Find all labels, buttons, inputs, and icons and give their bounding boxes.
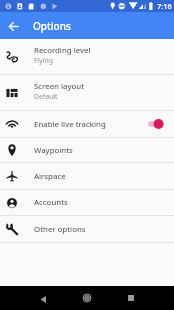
staticText: 7:16 xyxy=(157,1,172,11)
staticText: Other options xyxy=(34,224,86,235)
button[interactable]: Back xyxy=(2,14,26,38)
button[interactable]: Recent apps xyxy=(121,288,141,308)
staticText: Default xyxy=(34,92,58,101)
staticText: Options xyxy=(33,19,71,33)
button[interactable]: Other options xyxy=(0,216,174,242)
button[interactable]: Screen layout xyxy=(0,75,174,110)
button[interactable]: Airspace xyxy=(0,163,174,189)
button[interactable]: Enable live tracking xyxy=(0,111,174,137)
button[interactable]: Waypoints xyxy=(0,138,174,162)
button[interactable]: Recording level xyxy=(0,39,174,74)
button[interactable]: Back xyxy=(33,288,53,308)
button[interactable]: Accounts xyxy=(0,190,174,215)
staticText: Enable live tracking xyxy=(34,119,106,130)
staticText: Recording level xyxy=(34,45,91,56)
staticText: Screen layout xyxy=(34,81,85,92)
staticText: Waypoints xyxy=(34,145,73,156)
staticText: Accounts xyxy=(34,197,68,208)
staticText: Airspace xyxy=(34,171,66,182)
staticText: Flying xyxy=(34,56,53,65)
button[interactable]: Home xyxy=(77,288,97,308)
